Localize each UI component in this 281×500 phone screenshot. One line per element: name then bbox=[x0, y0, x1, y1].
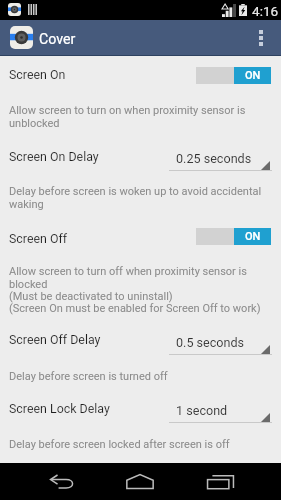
staticText: Screen Off Delay bbox=[9, 332, 101, 347]
staticText: ON bbox=[245, 230, 261, 243]
staticText: Delay before screen locked after screen … bbox=[9, 438, 271, 451]
button[interactable]: Screen Lock Delay bbox=[0, 394, 281, 424]
button[interactable]: Screen On bbox=[0, 60, 281, 90]
staticText: 0.5 seconds bbox=[176, 335, 245, 350]
staticText: 0.25 seconds bbox=[176, 151, 252, 166]
button[interactable]: Screen On Delay bbox=[0, 142, 281, 172]
staticText: ON bbox=[245, 69, 261, 82]
button[interactable]: Screen Off Delay bbox=[0, 325, 281, 355]
button[interactable]: Screen Off bbox=[0, 224, 281, 254]
staticText: Screen Off bbox=[9, 231, 68, 246]
staticText: 4:16 bbox=[252, 3, 279, 19]
staticText: Screen On bbox=[9, 67, 66, 82]
button[interactable]: Back bbox=[37, 463, 89, 500]
button[interactable]: Toggle, On bbox=[196, 228, 271, 245]
staticText: Delay before screen is turned off bbox=[9, 370, 271, 383]
staticText: Delay before screen is woken up to avoid… bbox=[9, 185, 271, 210]
staticText: Screen On Delay bbox=[9, 149, 99, 164]
staticText: Screen Lock Delay bbox=[9, 401, 110, 416]
button[interactable]: 1 second bbox=[169, 399, 272, 425]
button[interactable]: Recent apps bbox=[194, 463, 246, 500]
button[interactable]: 0.5 seconds bbox=[169, 331, 272, 357]
staticText: Cover bbox=[39, 31, 76, 48]
staticText: Allow screen to turn on when proximity s… bbox=[9, 104, 271, 129]
staticText: Allow screen to turn off when proximity … bbox=[9, 265, 271, 314]
button[interactable]: 0.25 seconds bbox=[169, 147, 272, 173]
button[interactable]: More options bbox=[247, 20, 275, 56]
button[interactable]: Home bbox=[114, 463, 166, 500]
button[interactable]: Toggle, On bbox=[196, 67, 271, 84]
staticText: 1 second bbox=[176, 403, 228, 418]
